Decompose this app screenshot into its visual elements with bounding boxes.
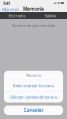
- staticText: Memoria: [26, 73, 41, 78]
- button[interactable]: Salida: [33, 12, 67, 19]
- button[interactable]: Solicitar cambio de horario: [4, 91, 63, 102]
- button[interactable]: Cancelar: [4, 105, 63, 115]
- staticText: Memoria: [23, 6, 44, 12]
- button[interactable]: Reformatear horario: [4, 80, 63, 91]
- staticText: 9:41: [3, 0, 10, 6]
- staticText: ‹: [1, 4, 3, 14]
- button[interactable]: Entrada: [0, 12, 33, 19]
- staticText: Cancelar: [23, 107, 43, 113]
- staticText: Solicitar cambio de horario: [10, 94, 57, 100]
- staticText: Salida: [45, 13, 56, 18]
- staticText: No tiene tarjeta insertada: [12, 23, 55, 28]
- button[interactable]: ‹: [0, 6, 20, 12]
- staticText: Entrada: [9, 13, 25, 18]
- staticText: Ajustes: [4, 6, 19, 12]
- staticText: Reformatear horario: [12, 83, 54, 88]
